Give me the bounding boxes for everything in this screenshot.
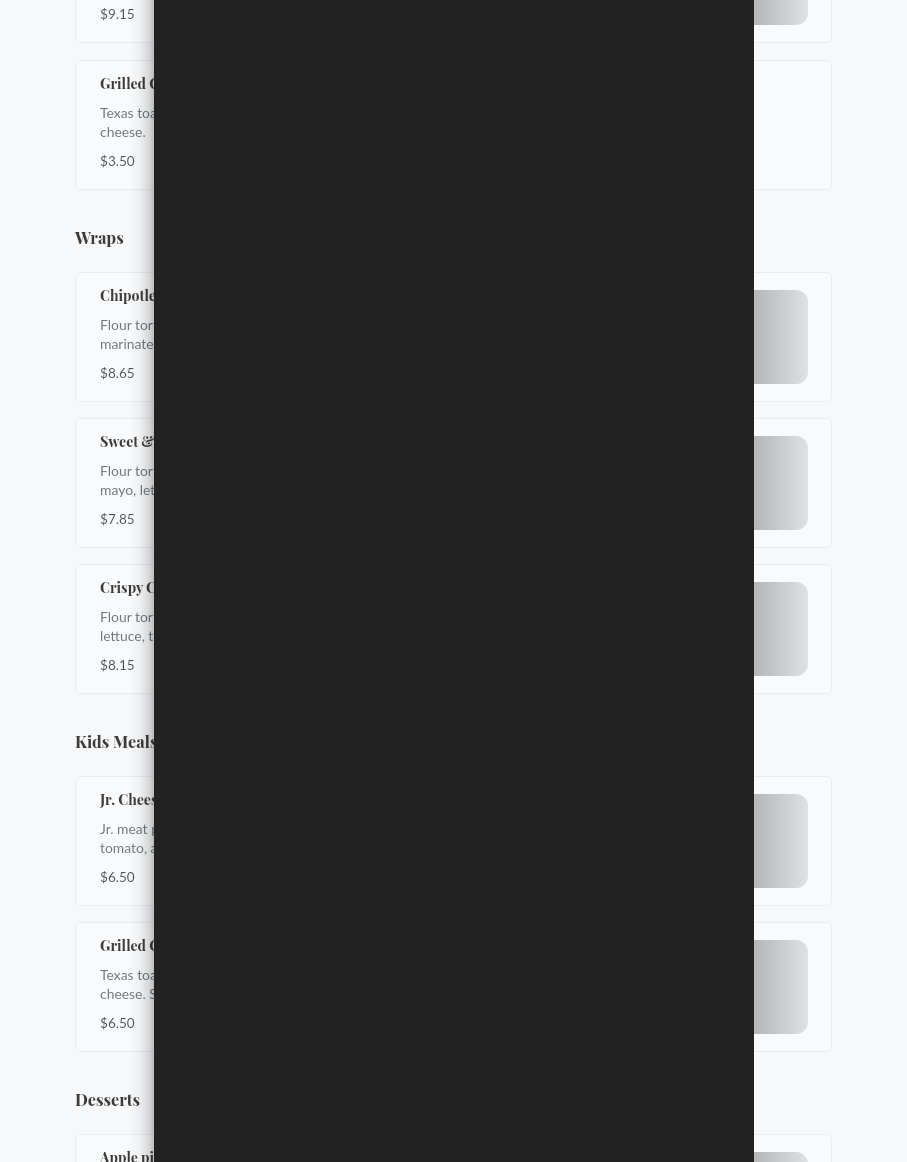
staticText: Texas toast with melted American cheese.… bbox=[100, 966, 305, 1002]
staticText: Chipotle Chicken Wrap bbox=[100, 286, 252, 305]
button[interactable]: Crispy Chicken Wrap bbox=[75, 564, 832, 694]
staticText: $3.50 bbox=[100, 153, 135, 169]
button[interactable]: Apple pie bbox=[75, 1134, 832, 1162]
staticText: Crispy Chicken Wrap bbox=[100, 578, 239, 597]
staticText: Apple pie bbox=[100, 1148, 162, 1162]
staticText: Grilled Cheese bbox=[100, 936, 196, 955]
staticText: $9.15 bbox=[100, 6, 135, 22]
staticText: $8.15 bbox=[100, 657, 135, 673]
staticText: $6.50 bbox=[100, 1015, 135, 1031]
button[interactable]: Chipotle Chicken Wrap bbox=[75, 272, 832, 402]
button[interactable]: Jr. Cheeseburger bbox=[75, 776, 832, 906]
staticText: Texas toast with melted American cheese. bbox=[100, 104, 305, 140]
button[interactable]: Classic Cheeseburger bbox=[75, 0, 832, 43]
staticText: Sweet & Spicy Chicken Wrap bbox=[100, 432, 288, 451]
staticText: Kids Meals bbox=[75, 730, 158, 752]
staticText: $6.50 bbox=[100, 869, 135, 885]
staticText: Flour tortilla with crispy chicken strip… bbox=[100, 608, 334, 644]
staticText: Jr. meat patty with American cheese, tom… bbox=[100, 820, 323, 856]
button[interactable]: Sweet & Spicy Chicken Wrap bbox=[75, 418, 832, 548]
staticText: Flour tortilla with crispy chicken, spic… bbox=[100, 462, 332, 498]
staticText: Desserts bbox=[75, 1088, 141, 1110]
staticText: $8.65 bbox=[100, 365, 135, 381]
button[interactable]: Grilled Cheese bbox=[75, 60, 832, 190]
staticText: $7.85 bbox=[100, 511, 135, 527]
staticText: Flour tortilla with grilled chipotle mar… bbox=[100, 316, 299, 352]
staticText: Wraps bbox=[75, 226, 124, 248]
staticText: Jr. Cheeseburger bbox=[100, 790, 210, 809]
staticText: Grilled Cheese bbox=[100, 74, 196, 93]
button[interactable]: Grilled Cheese bbox=[75, 922, 832, 1052]
